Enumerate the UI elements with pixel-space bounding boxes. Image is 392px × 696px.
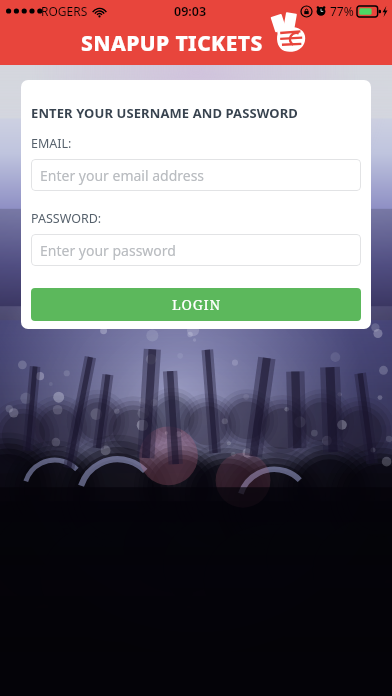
button[interactable]: LOGIN (31, 288, 361, 321)
staticText: PASSWORD: (31, 210, 102, 227)
staticText: ROGERS (41, 3, 88, 19)
button[interactable]: Enter your email address (31, 159, 361, 191)
staticText: EMAIL: (31, 135, 72, 152)
staticText: LOGIN (172, 295, 221, 314)
staticText: Enter your password (40, 241, 176, 260)
staticText: Enter your email address (40, 166, 205, 185)
button[interactable]: Enter your password (31, 234, 361, 266)
staticText: SNAPUP TICKETS (81, 29, 263, 58)
staticText: 09:03 (174, 3, 207, 20)
staticText: 77% (330, 3, 354, 19)
other: SnapUp Tickets logo (267, 12, 311, 54)
staticText: ENTER YOUR USERNAME AND PASSWORD (31, 104, 298, 122)
